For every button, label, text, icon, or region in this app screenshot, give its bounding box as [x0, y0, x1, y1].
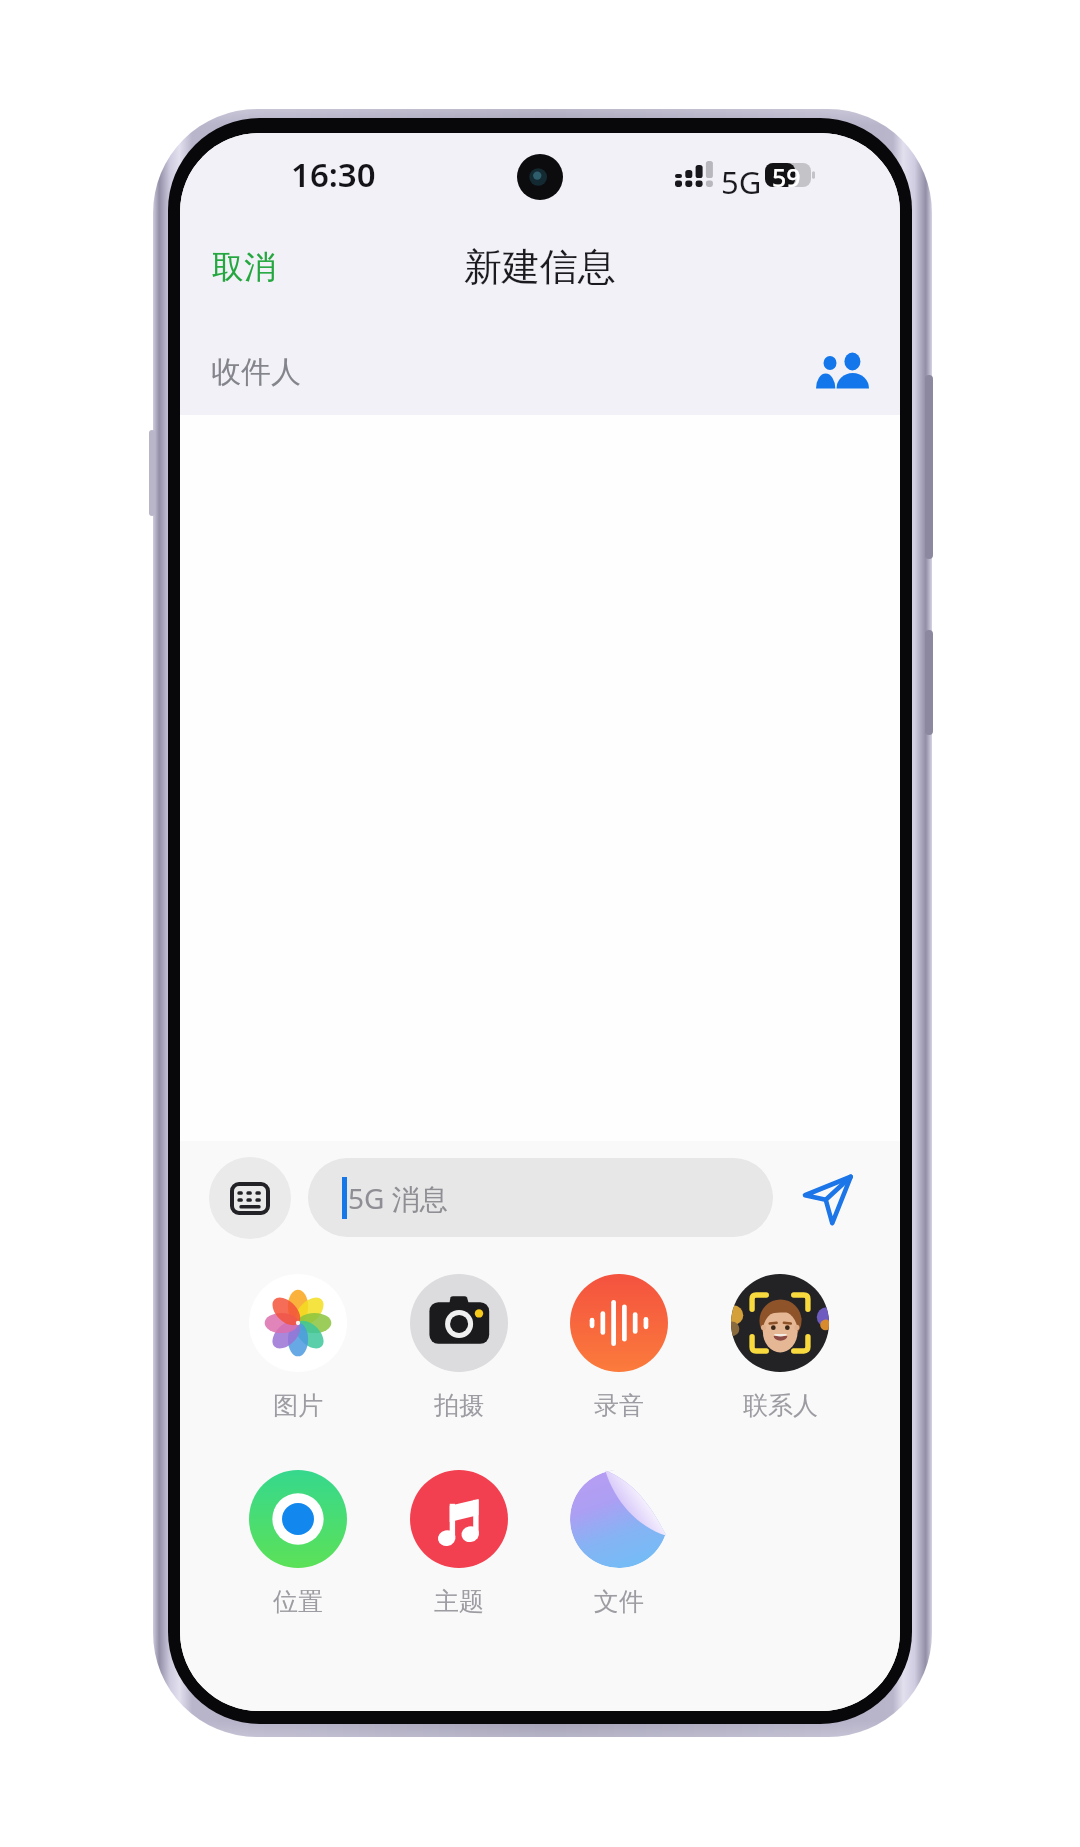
button[interactable]: 联系人 [700, 1274, 860, 1436]
staticText: 16:30 [291, 152, 376, 197]
button[interactable]: 收件人 [180, 325, 900, 415]
staticText: 收件人 [211, 353, 301, 391]
button[interactable]: Send [792, 1163, 864, 1235]
button[interactable]: 5G 消息 [308, 1158, 773, 1237]
button[interactable]: 主题 [379, 1470, 539, 1632]
staticText: 主题 [434, 1586, 484, 1617]
button[interactable]: Keyboard [209, 1157, 291, 1239]
staticText: 59 [772, 160, 801, 194]
button[interactable]: Choose contacts [809, 338, 875, 404]
button[interactable]: 录音 [539, 1274, 699, 1436]
button[interactable]: 文件 [539, 1470, 699, 1632]
staticText: 联系人 [743, 1390, 818, 1421]
button[interactable]: 位置 [218, 1470, 378, 1632]
button[interactable]: 图片 [218, 1274, 378, 1436]
staticText: 5G 消息 [348, 1179, 448, 1217]
staticText: 5G [721, 161, 762, 203]
staticText: 取消 [212, 247, 276, 287]
staticText: 新建信息 [464, 243, 616, 291]
staticText: 拍摄 [434, 1390, 484, 1421]
button[interactable]: 拍摄 [379, 1274, 539, 1436]
button[interactable]: 取消 [186, 229, 302, 305]
staticText: 图片 [273, 1390, 323, 1421]
staticText: 文件 [594, 1586, 644, 1617]
staticText: 录音 [594, 1390, 644, 1421]
staticText: 位置 [273, 1586, 323, 1617]
